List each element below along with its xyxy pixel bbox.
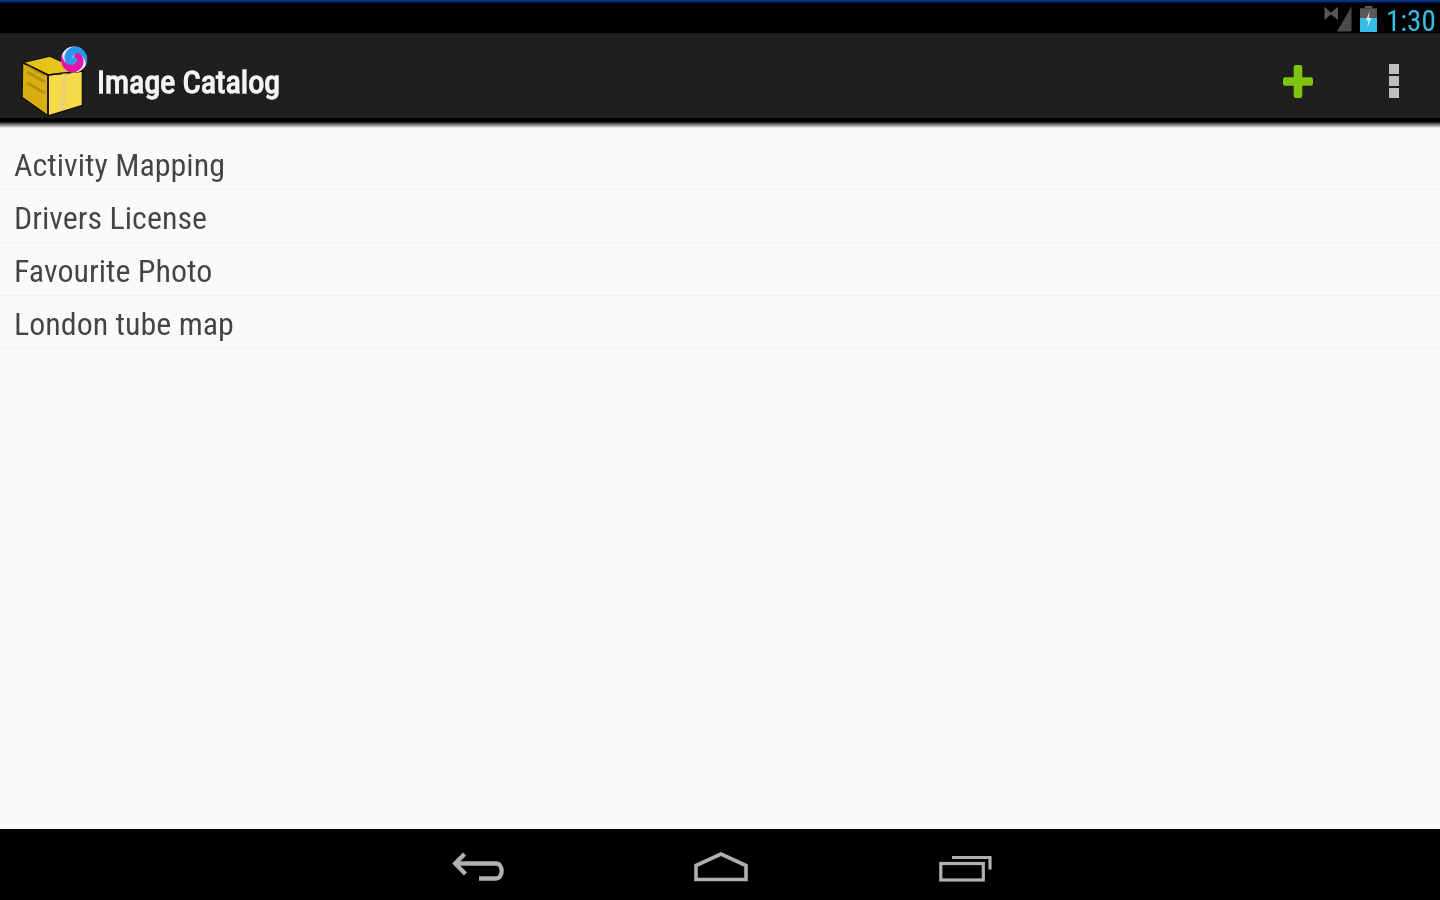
staticText: Drivers License [14,199,207,237]
button[interactable]: London tube map [0,296,1440,348]
staticText: London tube map [14,305,234,343]
button[interactable]: Image Catalog [0,33,296,118]
staticText: 1:30 [1386,4,1436,33]
button[interactable]: Activity Mapping [0,137,1440,189]
staticText: Favourite Photo [14,252,213,290]
button[interactable]: Home [676,832,768,900]
staticText: Image Catalog [97,63,280,101]
button[interactable]: Favourite Photo [0,243,1440,295]
button[interactable]: Back [435,832,527,900]
staticText: Activity Mapping [14,146,225,184]
button[interactable]: More options [1348,33,1440,118]
button[interactable]: Drivers License [0,190,1440,242]
button[interactable]: Add [1247,33,1348,118]
button[interactable]: Recent apps [920,829,1012,899]
